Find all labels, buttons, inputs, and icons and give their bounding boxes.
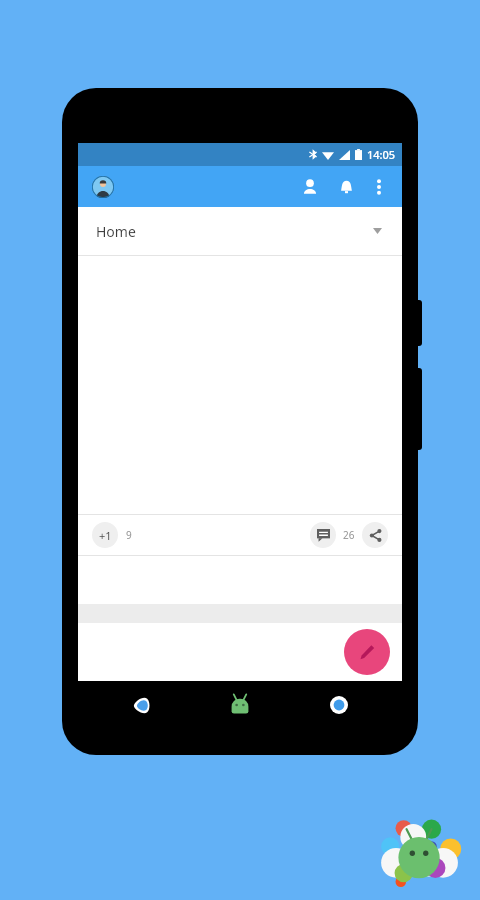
- button[interactable]: Back: [128, 692, 154, 718]
- other: Comments: [310, 522, 336, 548]
- button[interactable]: Comments: [310, 522, 355, 548]
- button[interactable]: More options: [364, 172, 394, 202]
- button[interactable]: Notifications: [328, 169, 364, 205]
- staticText: Home: [96, 222, 136, 241]
- button[interactable]: Home: [225, 689, 255, 719]
- button[interactable]: Recents: [326, 692, 352, 718]
- button[interactable]: Profile: [92, 176, 114, 198]
- button[interactable]: People: [292, 169, 328, 205]
- staticText: +1: [99, 528, 112, 543]
- button[interactable]: +1: [92, 522, 136, 548]
- staticText: 9: [126, 528, 132, 542]
- button[interactable]: Home: [78, 207, 402, 255]
- staticText: 26: [343, 528, 355, 542]
- button[interactable]: Share: [362, 522, 388, 548]
- staticText: 14:05: [367, 147, 396, 162]
- button[interactable]: Compose: [344, 629, 390, 675]
